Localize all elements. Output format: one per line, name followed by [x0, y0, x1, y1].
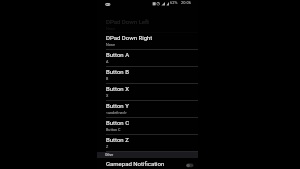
button[interactable]: Button X — [97, 84, 198, 101]
button[interactable]: DPad Down Right — [97, 33, 198, 50]
button[interactable]: Button Y — [97, 101, 198, 118]
staticText: 62% — [170, 0, 178, 5]
button[interactable]: Button Z — [97, 135, 198, 152]
staticText: Button X — [106, 85, 129, 92]
staticText: B — [106, 76, 109, 80]
staticText: A — [106, 59, 109, 63]
button[interactable]: Gamepad Notification — [97, 158, 198, 169]
button[interactable]: Toggle Gamepad Notification — [186, 158, 194, 169]
staticText: X — [106, 93, 109, 97]
button[interactable]: Button B — [97, 67, 198, 84]
staticText: Button Z — [106, 136, 129, 143]
staticText: Z — [106, 144, 109, 148]
staticText: Button C — [106, 119, 130, 126]
staticText: None — [106, 42, 115, 46]
button[interactable]: DPad Down Left — [97, 16, 198, 33]
staticText: Button C — [106, 127, 121, 131]
staticText: Button B — [106, 68, 129, 75]
staticText: None — [106, 26, 115, 30]
staticText: DPad Down Right — [106, 34, 153, 41]
staticText: 20:06 — [181, 0, 191, 5]
staticText: Other — [105, 153, 114, 157]
staticText: Button A — [106, 51, 130, 58]
button[interactable]: Button C — [97, 118, 198, 135]
staticText: Gamepad Notification — [106, 160, 165, 167]
staticText: DPad Down Left — [106, 18, 149, 25]
button[interactable]: Button A — [97, 50, 198, 67]
staticText: <undefined> — [106, 110, 127, 114]
staticText: Button Y — [106, 102, 129, 109]
